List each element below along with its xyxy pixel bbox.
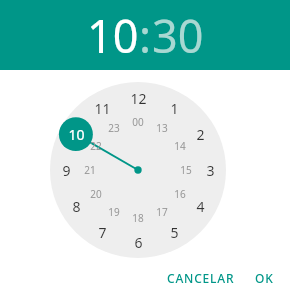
staticText: 10 [87, 5, 139, 66]
staticText: OK [255, 270, 274, 286]
button[interactable]: 10 [63, 121, 89, 147]
button[interactable]: 14 [167, 133, 193, 159]
button[interactable]: CANCELAR [159, 264, 243, 292]
staticText: 4 [196, 197, 205, 216]
staticText: 18 [132, 211, 144, 225]
button[interactable]: 20 [83, 181, 109, 207]
staticText: 8 [72, 197, 81, 216]
staticText: CANCELAR [167, 270, 235, 286]
button[interactable]: 21 [77, 157, 103, 183]
button[interactable]: 18 [125, 205, 151, 231]
staticText: 11 [94, 99, 111, 118]
button[interactable]: 7 [89, 219, 115, 245]
button[interactable]: 6 [125, 229, 151, 255]
staticText: 12 [130, 89, 147, 108]
button[interactable]: 12 [125, 85, 151, 111]
staticText: 13 [156, 121, 168, 135]
button[interactable]: 8 [63, 193, 89, 219]
staticText: 21 [84, 163, 96, 177]
button[interactable]: 19 [101, 199, 127, 225]
staticText: 14 [174, 139, 186, 153]
staticText: : [139, 5, 152, 66]
staticText: 00 [132, 115, 144, 129]
staticText: 20 [90, 187, 102, 201]
staticText: 9 [62, 161, 71, 180]
button[interactable]: 30 [152, 5, 204, 66]
button[interactable]: 13 [149, 115, 175, 141]
button[interactable]: 15 [173, 157, 199, 183]
button[interactable]: 9 [53, 157, 79, 183]
staticText: 30 [152, 5, 204, 66]
staticText: 15 [180, 163, 192, 177]
button[interactable]: 00 [125, 109, 151, 135]
button[interactable]: 2 [187, 121, 213, 147]
staticText: 5 [170, 223, 179, 242]
button[interactable]: 5 [161, 219, 187, 245]
staticText: 7 [98, 223, 107, 242]
staticText: 16 [174, 187, 186, 201]
staticText: 1 [170, 99, 179, 118]
staticText: 6 [134, 233, 143, 252]
button[interactable]: 1 [161, 95, 187, 121]
button[interactable]: 10 [87, 5, 139, 66]
button[interactable]: 11 [89, 95, 115, 121]
button[interactable]: 23 [101, 115, 127, 141]
button[interactable]: 4 [187, 193, 213, 219]
button[interactable]: OK [247, 264, 282, 292]
other: Clock face, 10 hours selected [50, 82, 226, 258]
staticText: 22 [90, 139, 102, 153]
staticText: 17 [156, 205, 168, 219]
button[interactable]: 22 [83, 133, 109, 159]
button[interactable]: 3 [197, 157, 223, 183]
staticText: 19 [108, 205, 120, 219]
staticText: 10 [68, 125, 85, 144]
button[interactable]: 17 [149, 199, 175, 225]
button[interactable]: 16 [167, 181, 193, 207]
staticText: 3 [206, 161, 215, 180]
staticText: 23 [108, 121, 120, 135]
staticText: 2 [196, 125, 205, 144]
